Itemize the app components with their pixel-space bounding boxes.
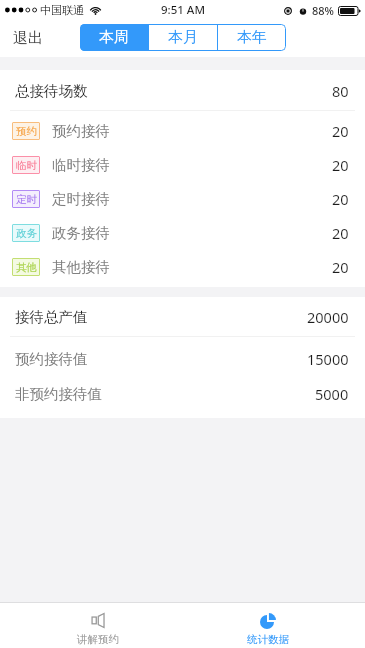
staticText: 其他接待	[52, 258, 110, 276]
staticText: 政务	[16, 227, 37, 240]
button[interactable]: 预约接待值	[15, 341, 349, 376]
staticText: 预约接待值	[15, 350, 88, 368]
button[interactable]: 讲解预约	[0, 603, 182, 648]
staticText: 临时	[16, 159, 37, 172]
button[interactable]: 定时	[12, 182, 349, 216]
staticText: 88%	[312, 3, 334, 18]
staticText: 政务接待	[52, 224, 110, 242]
staticText: 中国联通	[40, 3, 84, 17]
staticText: 20	[332, 121, 349, 141]
staticText: 临时接待	[52, 156, 110, 174]
button[interactable]: 统计数据	[182, 603, 365, 648]
staticText: 讲解预约	[58, 633, 138, 646]
staticText: 15000	[307, 349, 349, 369]
staticText: 其他	[16, 261, 37, 274]
button[interactable]: 政务	[12, 216, 349, 250]
button[interactable]: 预约	[12, 114, 349, 148]
button[interactable]: 退出	[13, 29, 43, 48]
button[interactable]: 临时	[12, 148, 349, 182]
staticText: 9:51 AM	[161, 2, 205, 18]
staticText: 20000	[307, 307, 349, 327]
staticText: 总接待场数	[15, 82, 88, 100]
staticText: 本年	[237, 28, 267, 47]
staticText: 非预约接待值	[15, 385, 102, 403]
staticText: 20	[332, 257, 349, 277]
staticText: 20	[332, 155, 349, 175]
button[interactable]: 本月	[149, 24, 217, 51]
staticText: 预约	[16, 125, 37, 138]
button[interactable]: 非预约接待值	[15, 376, 349, 411]
staticText: 20	[332, 189, 349, 209]
staticText: 5000	[315, 384, 349, 404]
staticText: 接待总产值	[15, 308, 88, 326]
button[interactable]: 接待总产值	[0, 297, 365, 336]
staticText: 本月	[168, 28, 198, 47]
staticText: 统计数据	[228, 633, 308, 646]
staticText: 20	[332, 223, 349, 243]
staticText: 定时接待	[52, 190, 110, 208]
button[interactable]: 本周	[80, 24, 148, 51]
staticText: 本周	[99, 28, 129, 47]
staticText: 预约接待	[52, 122, 110, 140]
button[interactable]: 本年	[218, 24, 286, 51]
staticText: 80	[332, 81, 349, 101]
staticText: 定时	[16, 193, 37, 206]
button[interactable]: 其他	[12, 250, 349, 284]
button[interactable]: 总接待场数	[0, 70, 365, 110]
